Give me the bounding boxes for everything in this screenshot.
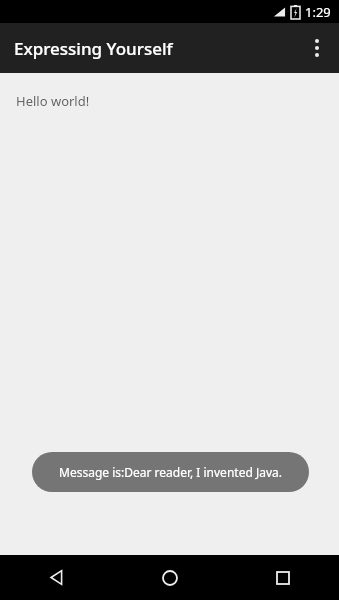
- staticText: 1:29: [305, 3, 331, 21]
- staticText: Hello world!: [16, 92, 90, 110]
- button[interactable]: Recent apps: [226, 555, 339, 600]
- button[interactable]: Message is:Dear reader, I invented Java.: [32, 452, 309, 492]
- staticText: Message is:Dear reader, I invented Java.: [59, 464, 282, 480]
- staticText: Expressing Yourself: [14, 37, 173, 60]
- button[interactable]: Home: [113, 555, 226, 600]
- button[interactable]: More options: [295, 23, 339, 73]
- button[interactable]: Back: [0, 555, 113, 600]
